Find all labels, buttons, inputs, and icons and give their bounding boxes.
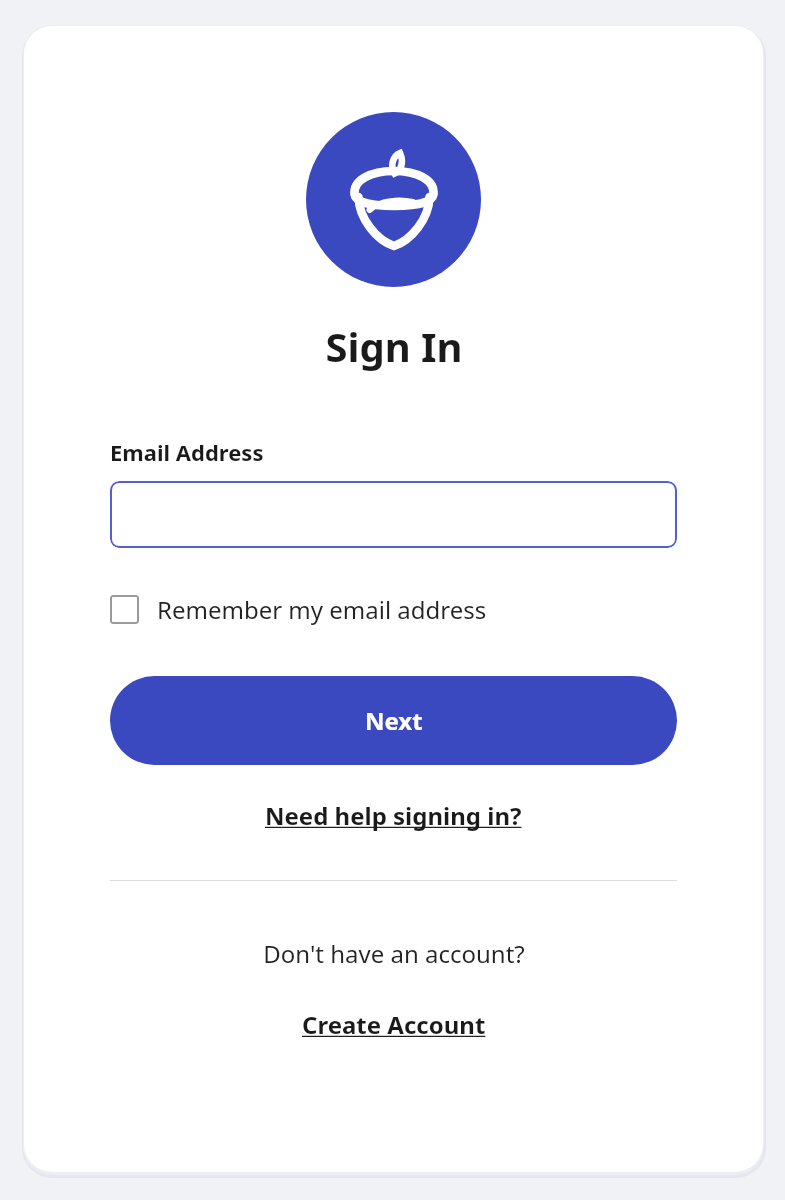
button[interactable]: Next xyxy=(110,676,677,765)
staticText: Create Account xyxy=(302,1008,486,1041)
staticText: Sign In xyxy=(325,319,463,373)
staticText: Don't have an account? xyxy=(263,937,525,970)
staticText: Next xyxy=(365,704,423,737)
button[interactable]: Remember my email address xyxy=(110,593,677,626)
staticText: Email Address xyxy=(110,437,264,467)
button[interactable]: Create Account xyxy=(298,1004,490,1045)
button[interactable]: Need help signing in? xyxy=(261,795,526,836)
button[interactable]: Email Address input field xyxy=(110,481,677,548)
staticText: Remember my email address xyxy=(157,593,487,626)
other: College Board acorn logo xyxy=(306,112,481,287)
staticText: Need help signing in? xyxy=(265,799,522,832)
